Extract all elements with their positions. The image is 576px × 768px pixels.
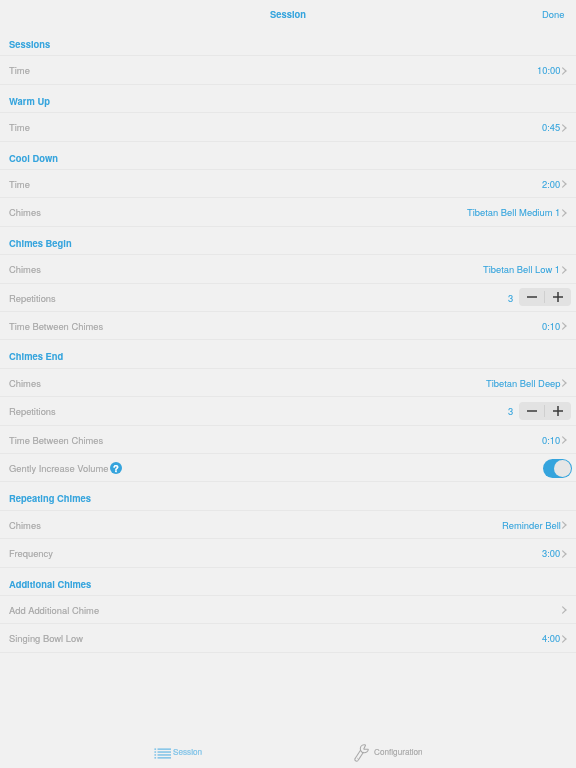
- staticText: Done: [542, 7, 565, 20]
- staticText: Cool Down: [9, 151, 58, 164]
- staticText: Chimes: [9, 376, 41, 389]
- staticText: Repeating Chimes: [9, 491, 91, 504]
- button[interactable]: Time: [0, 56, 576, 85]
- staticText: 3: [508, 291, 514, 304]
- staticText: Chimes: [9, 205, 41, 218]
- button[interactable]: Time Between Chimes: [0, 426, 576, 454]
- staticText: Time: [9, 63, 30, 76]
- button[interactable]: Frequency: [0, 539, 576, 568]
- staticText: Time: [9, 120, 30, 133]
- button[interactable]: Chimes: [0, 369, 576, 397]
- staticText: Warm Up: [9, 94, 50, 107]
- staticText: ?: [113, 462, 119, 473]
- staticText: Chimes Begin: [9, 236, 72, 249]
- staticText: 2:00: [542, 177, 561, 190]
- button[interactable]: Configuration: [354, 744, 423, 762]
- staticText: Additional Chimes: [9, 577, 92, 590]
- staticText: Sessions: [9, 37, 51, 50]
- button[interactable]: Chimes: [0, 255, 576, 284]
- button[interactable]: Increase Repetitions: [545, 402, 571, 420]
- staticText: Frequency: [9, 546, 53, 559]
- staticText: Reminder Bell: [502, 518, 561, 531]
- staticText: Tibetan Bell Medium 1: [467, 205, 561, 218]
- button[interactable]: Help: [110, 462, 122, 474]
- staticText: Tibetan Bell Deep: [486, 376, 561, 389]
- button[interactable]: Increase Repetitions: [545, 288, 571, 306]
- staticText: Singing Bowl Low: [9, 631, 83, 644]
- button[interactable]: Time Between Chimes: [0, 312, 576, 340]
- button[interactable]: Add Additional Chime: [0, 596, 576, 624]
- staticText: 4:00: [542, 631, 561, 644]
- button[interactable]: Time: [0, 113, 576, 142]
- staticText: Chimes: [9, 262, 41, 275]
- button[interactable]: Decrease Repetitions: [519, 402, 544, 420]
- staticText: 10:00: [537, 63, 561, 76]
- button[interactable]: Decrease Repetitions: [519, 288, 544, 306]
- staticText: Add Additional Chime: [9, 603, 100, 616]
- staticText: 0:45: [542, 120, 561, 133]
- staticText: Repetitions: [9, 291, 56, 304]
- staticText: Session: [173, 746, 203, 758]
- staticText: Tibetan Bell Low 1: [483, 262, 561, 275]
- staticText: Time Between Chimes: [9, 319, 104, 332]
- button[interactable]: Chimes: [0, 198, 576, 227]
- button[interactable]: Gently Increase Volume: [543, 459, 572, 478]
- button[interactable]: Singing Bowl Low: [0, 624, 576, 653]
- staticText: Gently Increase Volume: [9, 461, 109, 474]
- staticText: Time: [9, 177, 30, 190]
- staticText: 3: [508, 404, 514, 417]
- staticText: 0:10: [542, 319, 561, 332]
- staticText: 3:00: [542, 546, 561, 559]
- staticText: Session: [270, 7, 307, 20]
- button[interactable]: Time: [0, 170, 576, 198]
- button[interactable]: Session: [154, 747, 203, 759]
- staticText: Chimes End: [9, 349, 64, 362]
- button[interactable]: Chimes: [0, 511, 576, 539]
- staticText: 0:10: [542, 433, 561, 446]
- staticText: Chimes: [9, 518, 41, 531]
- staticText: Configuration: [374, 746, 423, 758]
- staticText: Repetitions: [9, 404, 56, 417]
- button[interactable]: Done: [531, 3, 576, 26]
- staticText: Time Between Chimes: [9, 433, 104, 446]
